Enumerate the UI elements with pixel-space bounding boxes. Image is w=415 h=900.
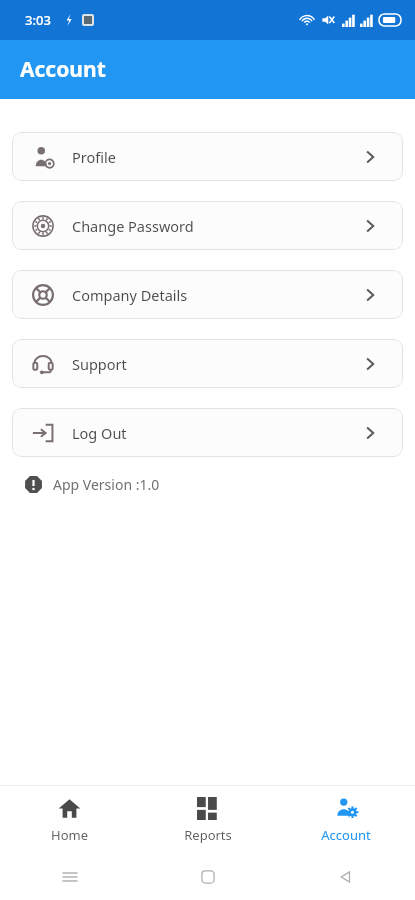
- staticText: App Version :1.0: [53, 475, 160, 494]
- button[interactable]: Home: [0, 786, 139, 854]
- button[interactable]: Profile: [12, 132, 403, 181]
- staticText: Log Out: [72, 423, 127, 443]
- button[interactable]: Support: [12, 339, 403, 388]
- button[interactable]: Reports: [139, 786, 277, 854]
- staticText: 3:03: [25, 11, 51, 29]
- staticText: Account: [321, 826, 371, 844]
- staticText: Change Password: [72, 216, 194, 236]
- other: Home: [200, 869, 216, 885]
- other: Back: [338, 869, 354, 885]
- staticText: Company Details: [72, 285, 188, 305]
- button[interactable]: Log Out: [12, 408, 403, 457]
- staticText: Support: [72, 354, 127, 374]
- other: Recent apps: [61, 868, 79, 886]
- staticText: Account: [20, 55, 106, 84]
- staticText: Profile: [72, 147, 116, 167]
- button[interactable]: Company Details: [12, 270, 403, 319]
- staticText: Reports: [184, 826, 232, 844]
- button[interactable]: Account: [277, 786, 415, 854]
- button[interactable]: Change Password: [12, 201, 403, 250]
- staticText: Home: [51, 826, 88, 844]
